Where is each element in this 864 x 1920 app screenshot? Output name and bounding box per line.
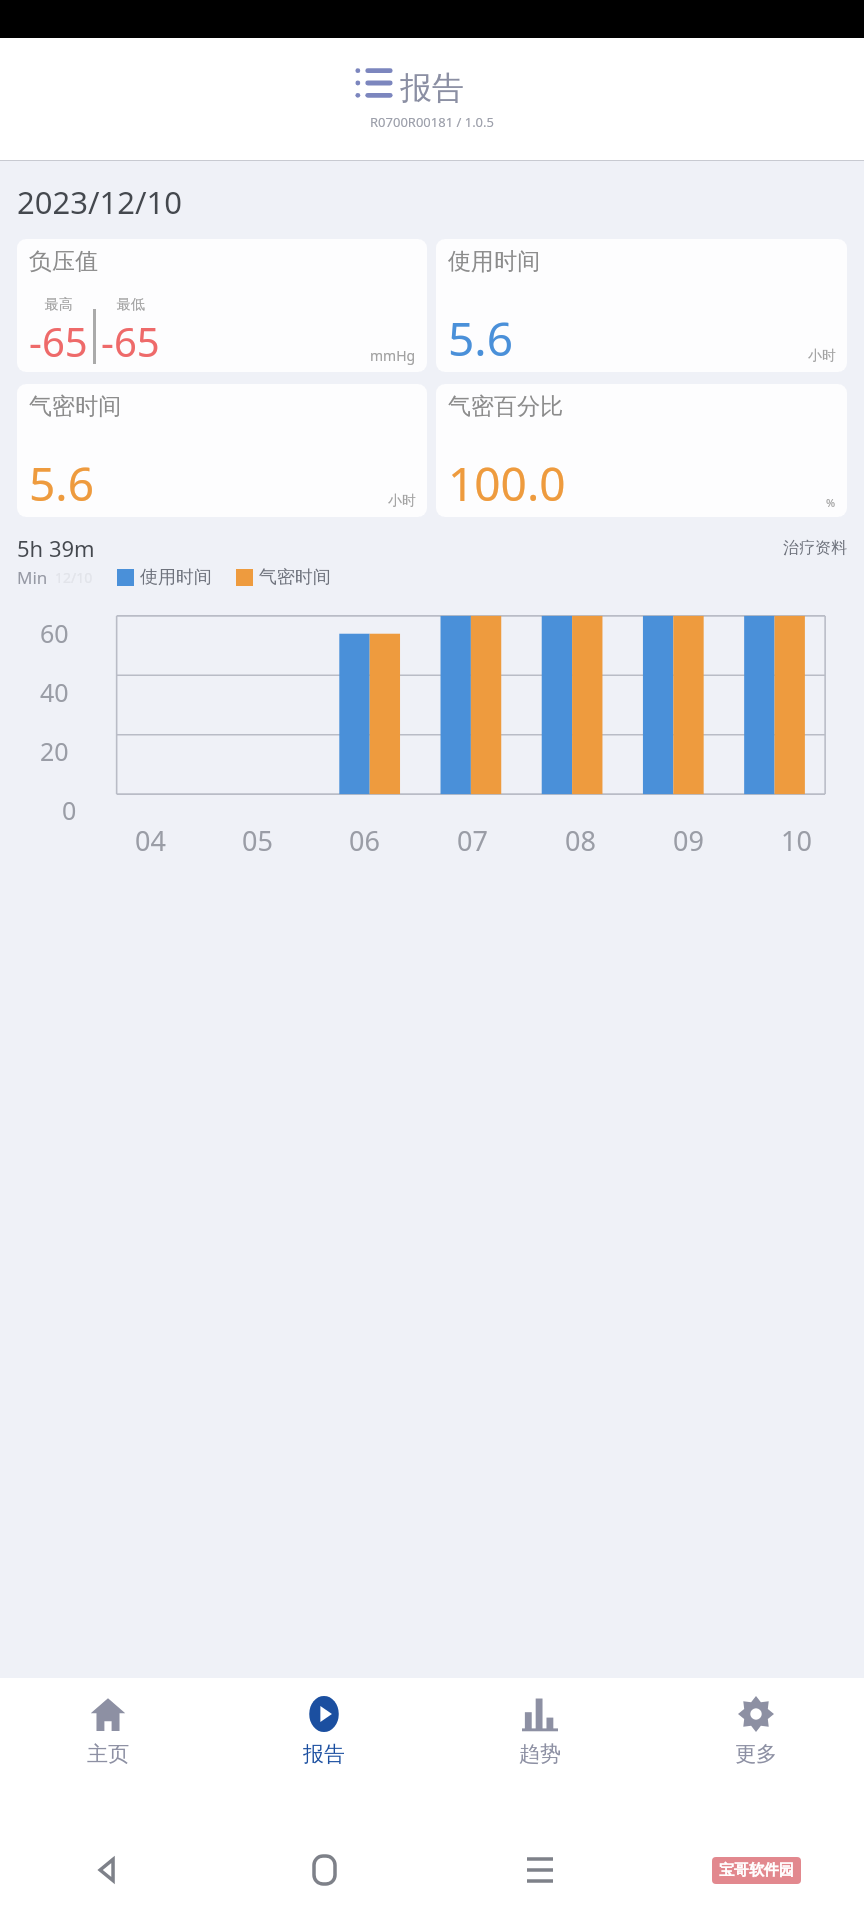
- button[interactable]: 主页: [0, 1692, 216, 1769]
- staticText: 08: [565, 822, 596, 859]
- staticText: 气密百分比: [448, 392, 563, 421]
- staticText: 12/10: [55, 568, 93, 587]
- staticText: 06: [349, 822, 380, 859]
- staticText: 趋势: [519, 1741, 561, 1767]
- button[interactable]: 负压值: [17, 239, 427, 372]
- staticText: 气密时间: [259, 566, 331, 589]
- button[interactable]: 使用时间: [436, 239, 847, 372]
- staticText: 更多: [735, 1741, 777, 1767]
- staticText: 5.6: [29, 452, 94, 515]
- staticText: 04: [135, 822, 166, 859]
- button[interactable]: 更多: [648, 1692, 864, 1769]
- staticText: 40: [40, 675, 69, 709]
- staticText: 05: [242, 822, 273, 859]
- staticText: 5.6: [448, 307, 513, 370]
- button[interactable]: 气密时间: [17, 384, 427, 517]
- staticText: 使用时间: [448, 247, 540, 276]
- staticText: 最低: [117, 296, 145, 314]
- staticText: %: [826, 495, 836, 510]
- staticText: 0: [62, 793, 77, 827]
- staticText: 负压值: [29, 247, 98, 276]
- button[interactable]: 趋势: [432, 1692, 648, 1769]
- staticText: 报告: [303, 1741, 345, 1767]
- staticText: 20: [40, 734, 69, 768]
- staticText: 小时: [388, 492, 416, 510]
- staticText: 60: [40, 616, 69, 650]
- staticText: 09: [673, 822, 704, 859]
- staticText: 100.0: [448, 452, 566, 515]
- staticText: 宝哥软件园: [719, 1861, 794, 1880]
- staticText: Min: [17, 566, 48, 589]
- staticText: 小时: [808, 347, 836, 365]
- staticText: -65: [101, 314, 160, 368]
- staticText: mmHg: [370, 346, 416, 365]
- staticText: 主页: [87, 1741, 129, 1767]
- button[interactable]: 气密百分比: [436, 384, 847, 517]
- staticText: 最高: [45, 296, 73, 314]
- staticText: 治疗资料: [783, 538, 847, 558]
- staticText: 07: [457, 822, 488, 859]
- staticText: 报告: [400, 68, 464, 108]
- button[interactable]: List view: [346, 54, 404, 112]
- staticText: 气密时间: [29, 392, 121, 421]
- staticText: 10: [781, 822, 812, 859]
- staticText: R0700R00181 / 1.0.5: [370, 113, 494, 131]
- staticText: 使用时间: [140, 566, 212, 589]
- staticText: 5h 39m: [17, 533, 95, 563]
- staticText: -65: [29, 314, 88, 368]
- button[interactable]: 报告: [216, 1692, 432, 1769]
- staticText: 2023/12/10: [17, 181, 182, 223]
